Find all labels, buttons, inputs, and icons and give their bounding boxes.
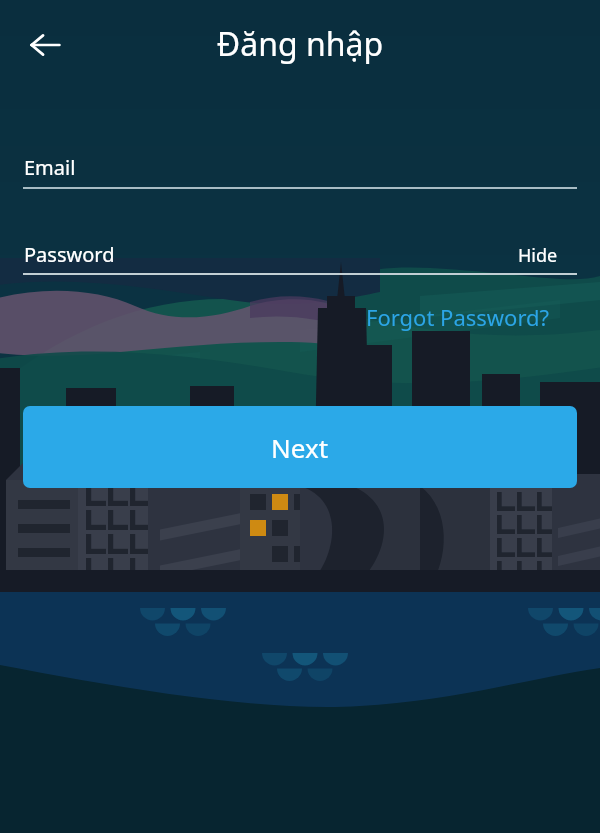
staticText: Đăng nhập [0, 22, 600, 66]
staticText: Email [24, 154, 76, 181]
button[interactable]: Forgot Password? [366, 298, 550, 336]
staticText: Forgot Password? [366, 302, 550, 332]
button[interactable]: Email [14, 146, 586, 194]
staticText: Next [271, 430, 329, 465]
staticText: Hide [518, 243, 558, 268]
button[interactable]: Password [14, 233, 494, 279]
button[interactable]: Next [23, 406, 577, 488]
staticText: Password [24, 241, 115, 268]
button[interactable]: Hide [508, 236, 580, 274]
button[interactable]: Back [18, 18, 72, 72]
